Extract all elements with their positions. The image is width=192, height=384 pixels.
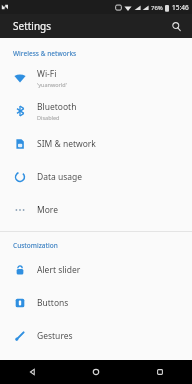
button[interactable]: Back: [0, 360, 64, 384]
button[interactable]: Wi-Fi: [0, 61, 192, 94]
staticText: Settings: [13, 19, 52, 33]
staticText: Bluetooth: [37, 101, 77, 113]
staticText: 15:46: [172, 3, 189, 12]
button[interactable]: Alert slider: [0, 253, 192, 286]
button[interactable]: Data usage: [0, 160, 192, 193]
staticText: Buttons: [37, 297, 69, 309]
staticText: SIM & network: [37, 138, 96, 150]
button[interactable]: Home: [64, 360, 128, 384]
staticText: More: [37, 204, 58, 216]
staticText: Alert slider: [37, 264, 81, 276]
staticText: Gestures: [37, 330, 73, 342]
staticText: Customization: [13, 241, 58, 250]
staticText: Data usage: [37, 171, 83, 183]
button[interactable]: SIM & network: [0, 127, 192, 160]
button[interactable]: Bluetooth: [0, 94, 192, 127]
staticText: 76%: [151, 4, 163, 12]
button[interactable]: Search: [168, 18, 184, 34]
button[interactable]: Buttons: [0, 286, 192, 319]
staticText: Wi-Fi: [37, 68, 57, 80]
staticText: 'yuanworld': [37, 81, 67, 88]
button[interactable]: More: [0, 193, 192, 226]
staticText: Wireless & networks: [13, 49, 77, 58]
button[interactable]: Gestures: [0, 319, 192, 352]
button[interactable]: Recent apps: [128, 360, 192, 384]
staticText: Disabled: [37, 114, 60, 121]
